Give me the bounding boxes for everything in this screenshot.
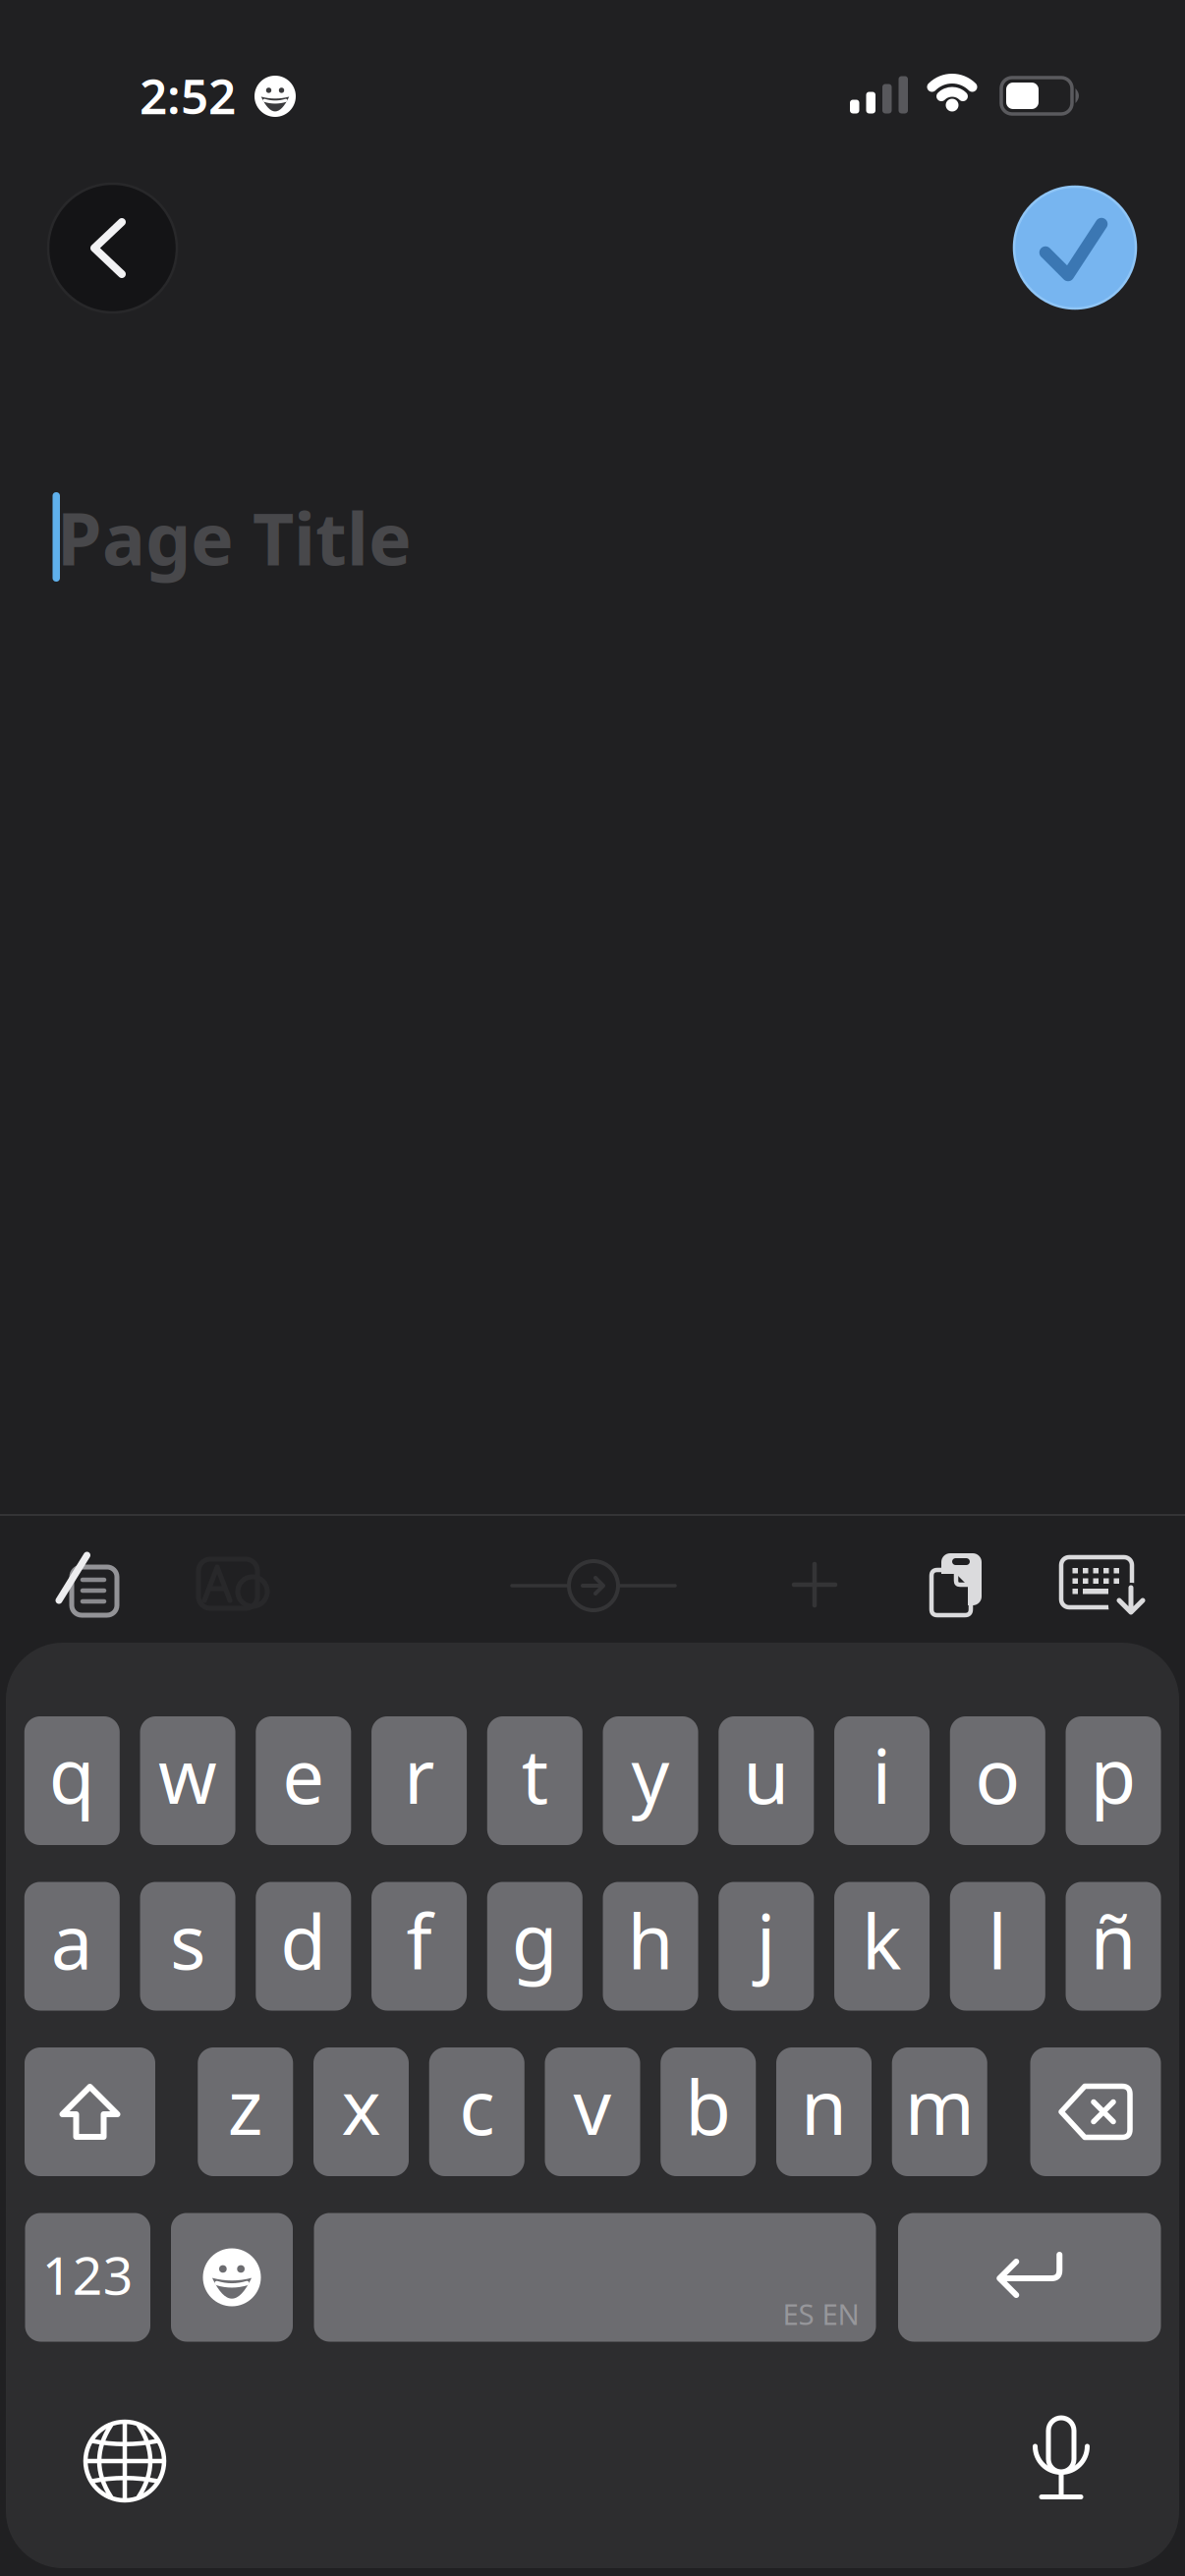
button[interactable]: Translate — [193, 1545, 277, 1622]
button[interactable]: m — [892, 2047, 987, 2176]
staticText: a — [51, 1891, 93, 1990]
button[interactable]: r — [372, 1716, 467, 1845]
button[interactable]: Add — [786, 1556, 843, 1613]
staticText: x — [341, 2056, 381, 2155]
button[interactable]: Delete — [1030, 2047, 1161, 2176]
button[interactable]: z — [198, 2047, 293, 2176]
staticText: m — [905, 2056, 975, 2155]
button[interactable]: q — [24, 1716, 120, 1845]
button[interactable]: g — [487, 1882, 582, 2011]
staticText: w — [158, 1725, 217, 1824]
button[interactable]: p — [1066, 1716, 1161, 1845]
button[interactable]: a — [24, 1882, 120, 2011]
button[interactable]: h — [603, 1882, 698, 2011]
button[interactable]: d — [256, 1882, 351, 2011]
button[interactable]: k — [834, 1882, 930, 2011]
staticText: s — [170, 1891, 205, 1990]
button[interactable]: u — [719, 1716, 814, 1845]
staticText: t — [522, 1725, 548, 1824]
staticText: l — [988, 1891, 1007, 1990]
staticText: Page Title — [57, 490, 412, 585]
staticText: r — [404, 1725, 434, 1824]
staticText: ES EN — [783, 2295, 859, 2333]
button[interactable]: t — [487, 1716, 582, 1845]
button[interactable]: Next Keyboard — [85, 2422, 164, 2500]
button[interactable]: Space — [314, 2213, 876, 2342]
staticText: g — [512, 1891, 558, 1990]
staticText: c — [459, 2056, 494, 2155]
button[interactable]: Dismiss Keyboard — [1061, 1557, 1150, 1618]
button[interactable]: s — [140, 1882, 235, 2011]
button[interactable]: Insert — [512, 1548, 675, 1623]
staticText: y — [631, 1725, 670, 1824]
button[interactable]: ñ — [1066, 1882, 1161, 2011]
button[interactable]: l — [950, 1882, 1045, 2011]
staticText: q — [49, 1725, 95, 1824]
button[interactable]: 123 — [25, 2213, 150, 2342]
staticText: e — [282, 1725, 325, 1824]
button[interactable]: x — [313, 2047, 409, 2176]
button[interactable]: Shift — [25, 2047, 155, 2176]
button[interactable]: j — [719, 1882, 814, 2011]
staticText: k — [862, 1891, 902, 1990]
button[interactable]: Dictation — [1035, 2418, 1087, 2499]
button[interactable]: w — [140, 1716, 235, 1845]
button[interactable]: i — [834, 1716, 930, 1845]
staticText: f — [406, 1891, 432, 1990]
button[interactable]: v — [545, 2047, 640, 2176]
button[interactable]: b — [660, 2047, 756, 2176]
button[interactable]: f — [372, 1882, 467, 2011]
button[interactable]: Done — [1014, 187, 1136, 308]
staticText: b — [685, 2056, 731, 2155]
button[interactable]: c — [429, 2047, 525, 2176]
button[interactable]: Markup — [51, 1547, 126, 1622]
staticText: z — [228, 2056, 263, 2155]
staticText: ñ — [1090, 1891, 1136, 1990]
button[interactable]: Return — [898, 2213, 1161, 2342]
staticText: o — [975, 1725, 1020, 1824]
staticText: n — [801, 2056, 847, 2155]
button[interactable]: o — [950, 1716, 1045, 1845]
staticText: p — [1090, 1725, 1136, 1824]
button[interactable]: Paste — [929, 1553, 984, 1618]
staticText: 123 — [42, 2240, 133, 2309]
staticText: j — [756, 1891, 776, 1990]
staticText: v — [573, 2056, 612, 2155]
staticText: d — [280, 1891, 327, 1990]
staticText: i — [872, 1725, 892, 1824]
staticText: u — [743, 1725, 789, 1824]
button[interactable]: Back — [48, 184, 177, 312]
button[interactable]: n — [776, 2047, 872, 2176]
staticText: 2:52 — [140, 63, 236, 127]
button[interactable]: Emoji — [171, 2213, 293, 2342]
button[interactable]: y — [603, 1716, 698, 1845]
staticText: h — [627, 1891, 674, 1990]
button[interactable]: e — [256, 1716, 351, 1845]
